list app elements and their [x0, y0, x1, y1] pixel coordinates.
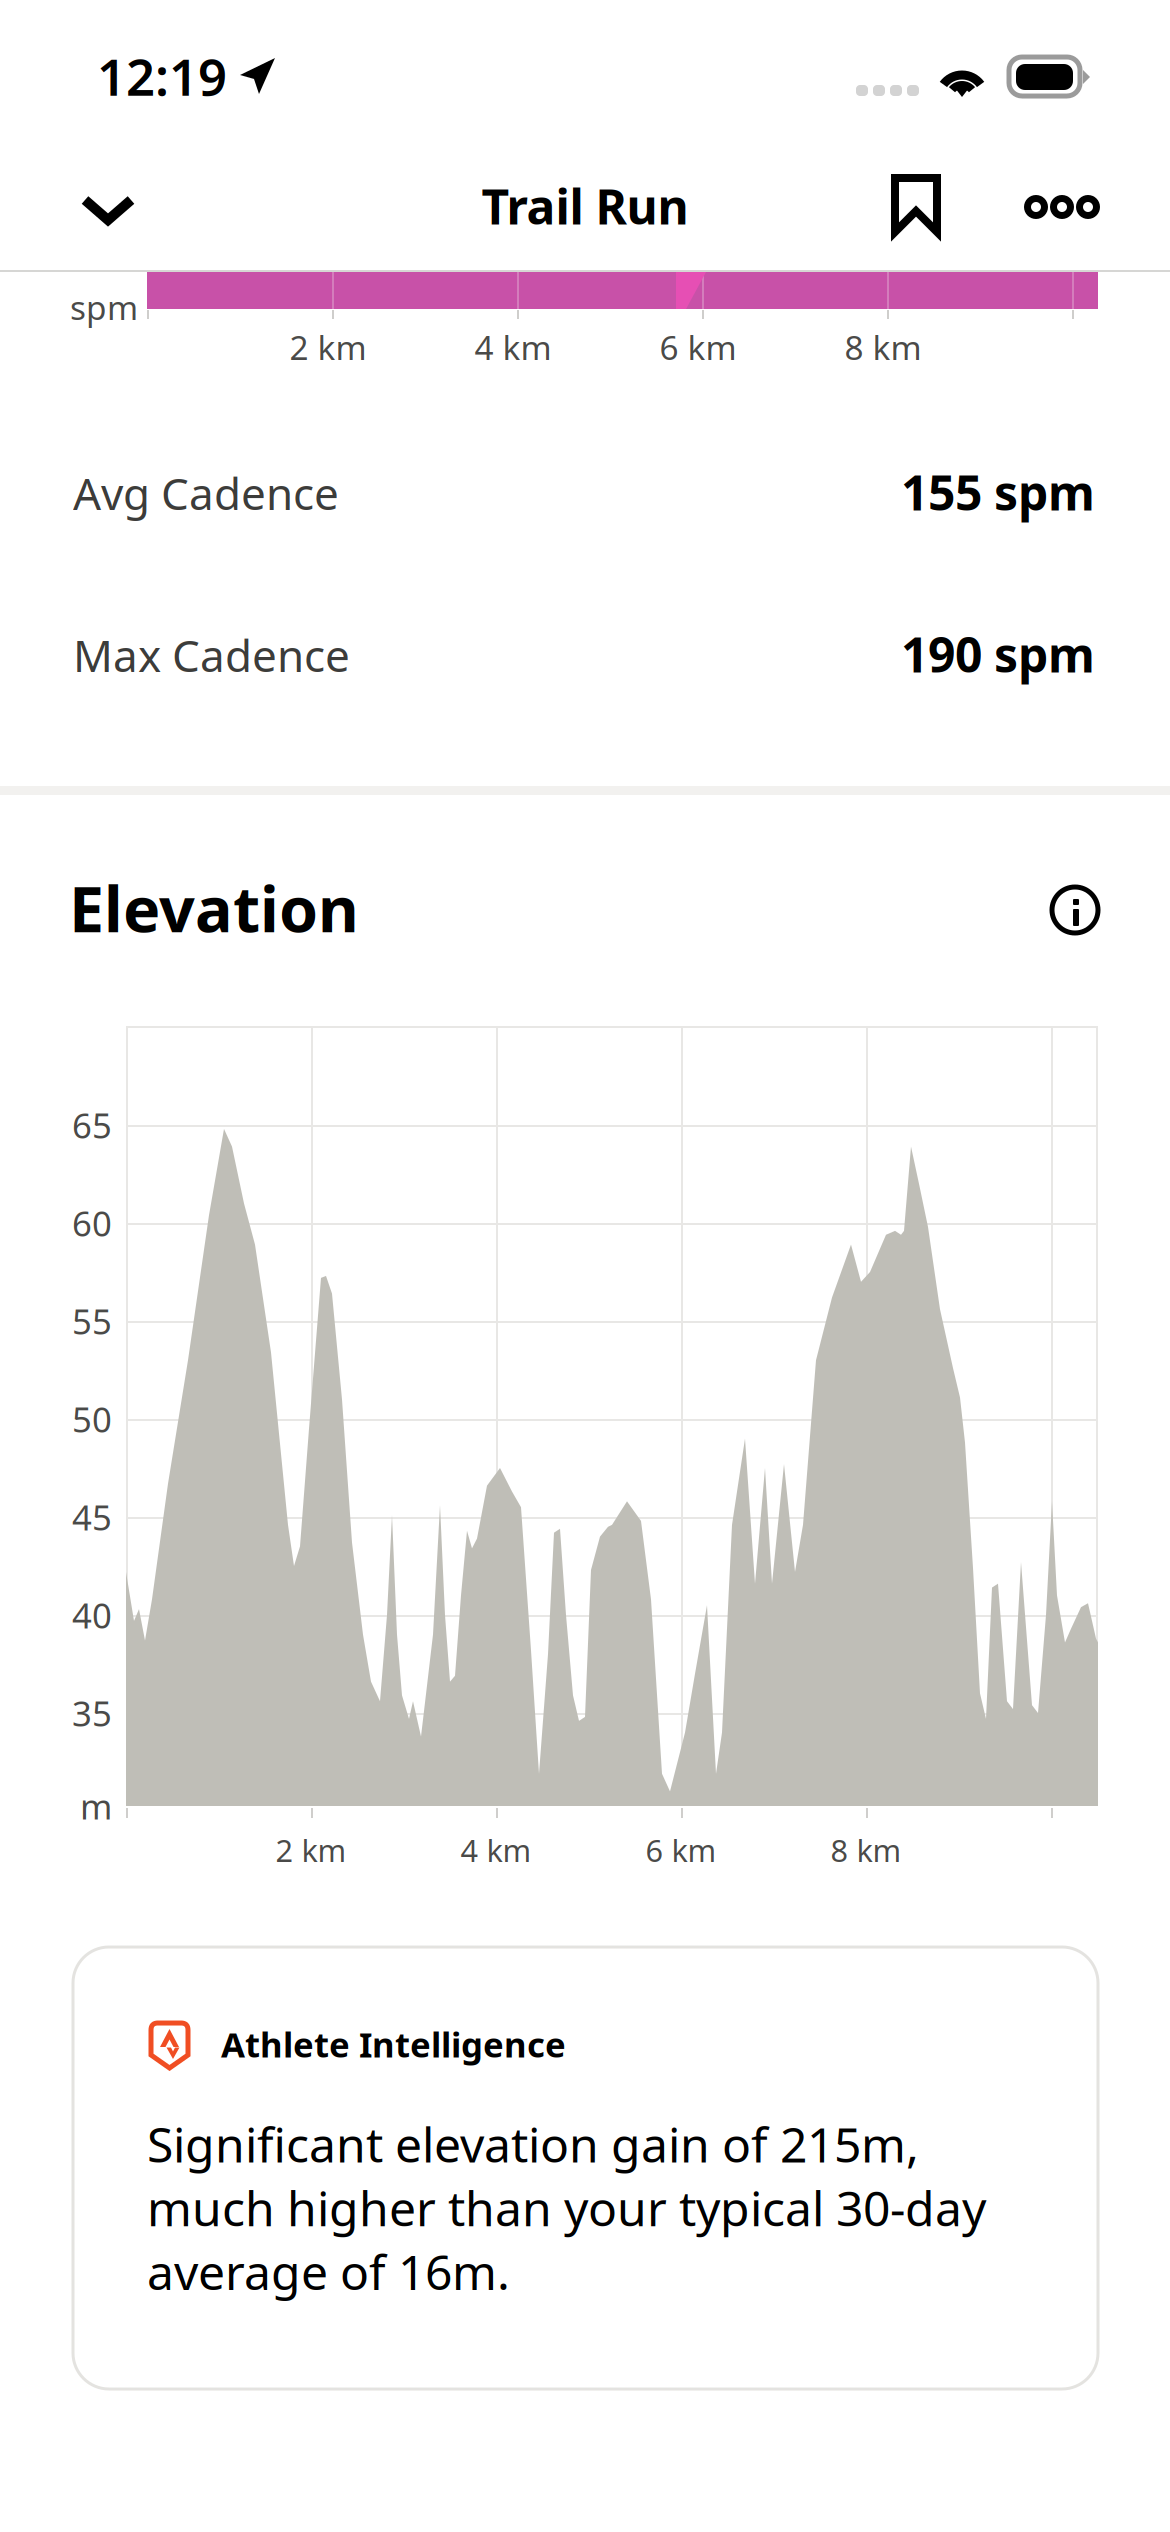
staticText: 35: [72, 1690, 112, 1736]
button[interactable]: Save activity: [0, 0, 1170, 2532]
staticText: 12:19: [97, 42, 227, 110]
staticText: Trail Run: [481, 174, 688, 238]
staticText: 155 spm: [901, 460, 1095, 524]
staticText: 6 km: [659, 325, 736, 369]
staticText: Elevation: [69, 866, 359, 950]
staticText: Avg Cadence: [73, 464, 339, 522]
staticText: Significant elevation gain of 215m, much…: [147, 2112, 986, 2303]
staticText: 6 km: [645, 1830, 716, 1870]
staticText: 50: [72, 1396, 112, 1442]
staticText: 190 spm: [901, 622, 1095, 686]
staticText: 55: [72, 1298, 112, 1344]
button[interactable]: More options: [0, 0, 1170, 2532]
staticText: 4 km: [460, 1830, 531, 1870]
staticText: 2 km: [289, 325, 366, 369]
staticText: spm: [70, 285, 138, 329]
staticText: 65: [72, 1102, 112, 1148]
staticText: 8 km: [830, 1830, 901, 1870]
staticText: Max Cadence: [73, 626, 350, 684]
button[interactable]: Athlete Intelligence insight: [0, 0, 1170, 2532]
button[interactable]: Collapse: [0, 0, 1170, 2532]
staticText: 45: [72, 1494, 112, 1540]
staticText: 8 km: [844, 325, 921, 369]
staticText: 2 km: [275, 1830, 346, 1870]
staticText: m: [80, 1783, 112, 1829]
staticText: Athlete Intelligence: [221, 2021, 566, 2067]
staticText: 4 km: [474, 325, 551, 369]
staticText: 40: [72, 1592, 112, 1638]
button[interactable]: About elevation: [0, 0, 1170, 2532]
staticText: 60: [72, 1200, 112, 1246]
